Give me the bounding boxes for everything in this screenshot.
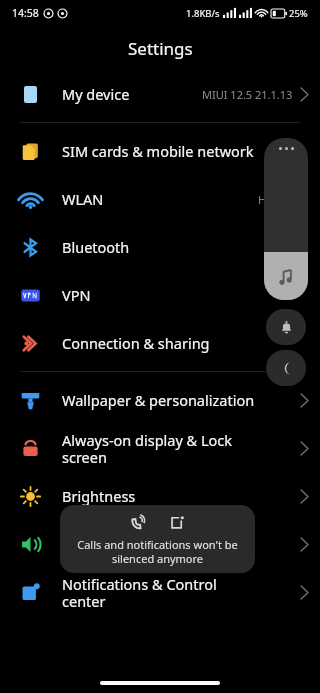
button[interactable]: Always-on display & Lock screen [0,424,320,472]
button[interactable]: Bluetooth [0,223,320,271]
button[interactable]: Notifications & Control center [0,568,320,616]
staticText: Wallpaper & personalization [62,390,255,410]
button[interactable]: Do not disturb [266,350,306,386]
staticText: SIM cards & mobile network [62,141,254,161]
button[interactable]: Brightness [0,472,320,520]
button[interactable]: My device [0,70,320,118]
staticText: Notifications & Control center [62,574,217,611]
button[interactable]: Media volume [264,138,308,300]
staticText: 14:58 [12,6,39,20]
button[interactable]: Ring mode [266,309,306,345]
staticText: 1.8KB/s [186,7,220,20]
staticText: 25% [289,7,308,20]
button[interactable]: Sound & vibration [0,520,320,568]
staticText: My device [62,84,130,104]
staticText: VPN [62,285,91,305]
staticText: Sound & vibration [62,534,185,554]
button[interactable]: Wallpaper & personalization [0,376,320,424]
staticText: Always-on display & Lock screen [62,430,233,467]
staticText: Brightness [62,486,136,506]
button[interactable]: VPN [0,271,320,319]
staticText: WLAN [62,189,104,209]
staticText: Home- [258,192,293,207]
staticText: Settings [128,37,193,60]
staticText: Calls and notifications won't be silence… [77,537,238,566]
staticText: MIUI 12.5 21.1.13 [202,87,293,102]
button[interactable]: SIM cards & mobile network [0,127,320,175]
button[interactable]: Connection & sharing [0,319,320,367]
button[interactable]: WLAN [0,175,320,223]
staticText: Connection & sharing [62,333,210,353]
staticText: Bluetooth [62,237,130,257]
